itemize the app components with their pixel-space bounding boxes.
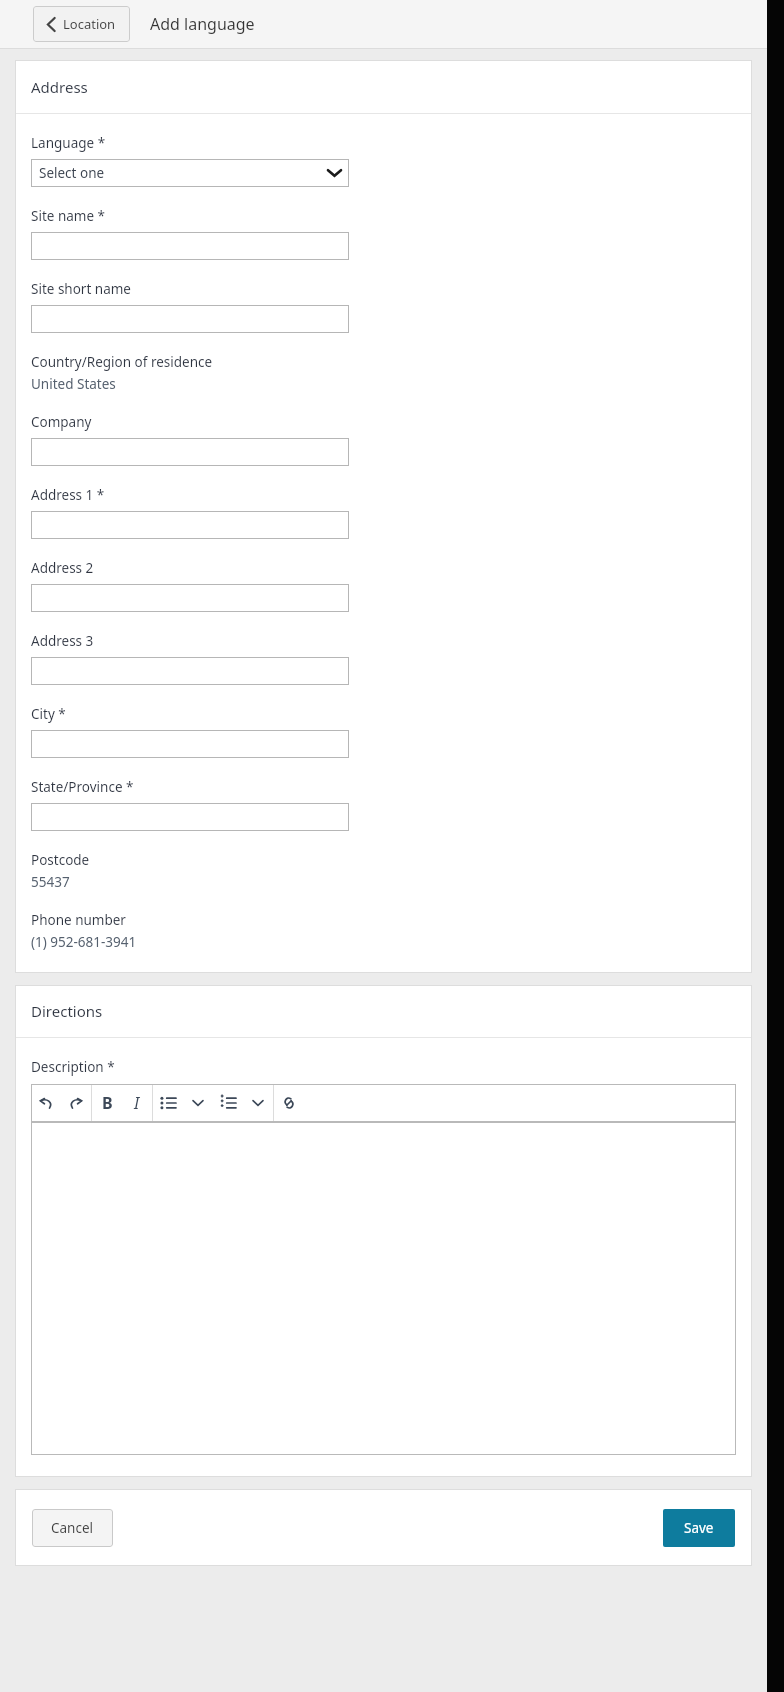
button[interactable] [31, 232, 349, 260]
button[interactable]: Undo [31, 1084, 61, 1122]
staticText: Cancel [51, 1519, 94, 1537]
staticText: City * [31, 705, 66, 723]
staticText: Description * [31, 1058, 115, 1076]
button[interactable] [31, 1122, 736, 1455]
staticText: I [134, 1092, 140, 1114]
button[interactable]: Numbered list [213, 1084, 243, 1122]
button[interactable] [31, 803, 349, 831]
button[interactable] [31, 584, 349, 612]
button[interactable]: Select one [31, 159, 349, 187]
button[interactable] [31, 730, 349, 758]
button[interactable]: Cancel [32, 1509, 113, 1547]
staticText: Language * [31, 134, 106, 152]
staticText: Address 3 [31, 632, 94, 650]
staticText: State/Province * [31, 778, 134, 796]
staticText: 55437 [31, 873, 70, 891]
button[interactable]: Insert link [274, 1084, 304, 1122]
staticText: (1) 952-681-3941 [31, 933, 137, 951]
button[interactable]: Numbered list options [243, 1084, 273, 1122]
staticText: Location [63, 15, 116, 33]
staticText: Save [684, 1519, 714, 1537]
staticText: Postcode [31, 851, 90, 869]
staticText: Address [31, 77, 88, 97]
button[interactable]: Bold [92, 1084, 122, 1122]
button[interactable] [31, 511, 349, 539]
button[interactable]: Redo [61, 1084, 91, 1122]
staticText: Address 1 * [31, 486, 105, 504]
staticText: Site name * [31, 207, 105, 225]
staticText: Company [31, 413, 92, 431]
staticText: Site short name [31, 280, 131, 298]
button[interactable]: Italic [122, 1084, 152, 1122]
button[interactable]: Save [663, 1509, 735, 1547]
staticText: Country/Region of residence [31, 353, 213, 371]
staticText: United States [31, 375, 116, 393]
button[interactable]: Bulleted list [153, 1084, 183, 1122]
staticText: Select one [39, 164, 105, 182]
button[interactable] [31, 438, 349, 466]
staticText: Add language [150, 13, 255, 35]
staticText: Phone number [31, 911, 126, 929]
staticText: Directions [31, 1001, 103, 1021]
button[interactable] [31, 657, 349, 685]
staticText: Address 2 [31, 559, 94, 577]
button[interactable] [31, 305, 349, 333]
staticText: B [102, 1092, 113, 1114]
button[interactable]: Location [33, 6, 130, 42]
button[interactable]: Bulleted list options [183, 1084, 213, 1122]
